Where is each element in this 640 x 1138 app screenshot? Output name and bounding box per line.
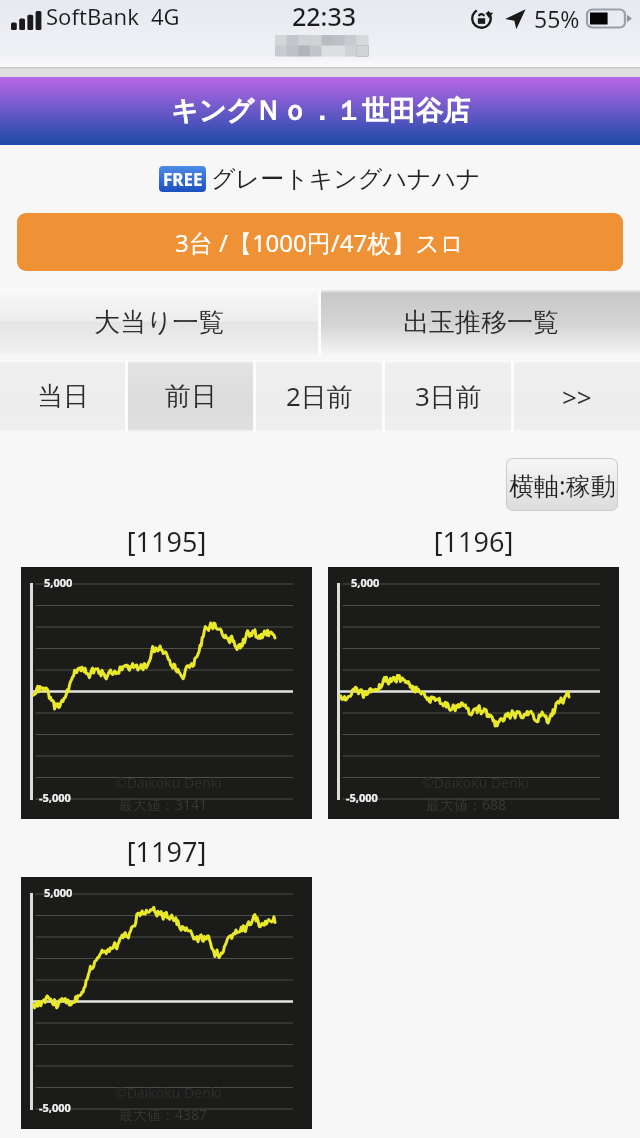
staticText: 4G: [151, 1, 180, 31]
button[interactable]: 出玉推移一覧: [321, 289, 640, 356]
staticText: 22:33: [292, 0, 357, 33]
staticText: 3台 /【1000円/47枚】スロ: [175, 226, 465, 259]
button[interactable]: 2日前: [256, 360, 382, 432]
staticText: -5,000: [39, 1100, 71, 1115]
staticText: グレートキングハナハナ: [211, 164, 481, 194]
staticText: SoftBank: [46, 1, 139, 31]
staticText: [1195]: [21, 523, 312, 560]
button[interactable]: 3台 /【1000円/47枚】スロ: [17, 213, 623, 271]
staticText: 前日: [165, 380, 217, 413]
staticText: 最大値：4387: [119, 1105, 208, 1124]
staticText: 3日前: [415, 378, 482, 414]
staticText: 5,000: [44, 575, 73, 590]
staticText: 出玉推移一覧: [403, 306, 559, 339]
button[interactable]: 当日: [0, 360, 125, 432]
staticText: 最大値：688: [426, 795, 507, 814]
staticText: >>: [562, 379, 592, 414]
button[interactable]: 前日: [128, 360, 253, 432]
staticText: ©Daikoku Denki: [115, 1083, 222, 1102]
button[interactable]: >>: [514, 360, 640, 432]
staticText: [1196]: [328, 523, 619, 560]
button[interactable]: 大当り一覧: [0, 289, 318, 356]
staticText: FREE: [163, 168, 203, 191]
staticText: 5,000: [351, 575, 380, 590]
button[interactable]: 3日前: [385, 360, 511, 432]
staticText: 5,000: [44, 885, 73, 900]
staticText: [1197]: [21, 833, 312, 870]
staticText: ©Daikoku Denki: [422, 773, 529, 792]
staticText: 55%: [534, 3, 580, 34]
staticText: キングＮｏ．１世田谷店: [171, 94, 470, 128]
staticText: 2日前: [286, 378, 353, 414]
staticText: 横軸:稼動: [509, 468, 616, 502]
staticText: 当日: [37, 380, 89, 413]
staticText: -5,000: [39, 790, 71, 805]
staticText: 最大値：3141: [119, 795, 208, 814]
staticText: ©Daikoku Denki: [115, 773, 222, 792]
staticText: -5,000: [346, 790, 378, 805]
button[interactable]: 横軸:稼動: [507, 459, 617, 510]
staticText: 大当り一覧: [94, 306, 225, 339]
